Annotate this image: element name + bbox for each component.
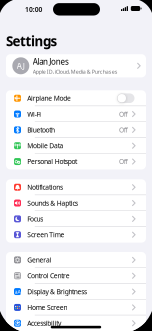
staticText: Focus xyxy=(27,214,43,223)
staticText: Apple ID, iCloud, Media & Purchases xyxy=(33,68,118,75)
button[interactable]: Home Screen xyxy=(6,299,146,315)
staticText: Alan Jones xyxy=(33,56,69,67)
button[interactable]: Notifications xyxy=(6,179,146,195)
staticText: 10:00 xyxy=(25,5,43,14)
staticText: Wi-Fi xyxy=(27,110,41,118)
staticText: Accessibility xyxy=(27,319,61,328)
button[interactable]: Control Centre xyxy=(6,268,146,284)
staticText: Personal Hotspot xyxy=(27,157,77,166)
staticText: Control Centre xyxy=(27,271,70,280)
staticText: Screen Time xyxy=(27,230,64,239)
button[interactable]: Airplane Mode xyxy=(117,93,134,103)
button[interactable]: Mobile Data xyxy=(6,138,146,154)
staticText: Sounds & Haptics xyxy=(27,199,78,207)
staticText: aA xyxy=(14,288,20,295)
button[interactable]: Wi-Fi xyxy=(6,106,146,122)
staticText: AJ xyxy=(17,60,25,71)
button[interactable]: aA xyxy=(6,284,146,299)
staticText: Bluetooth xyxy=(27,125,55,134)
button[interactable]: Accessibility xyxy=(6,315,146,331)
staticText: Notifications xyxy=(27,183,63,192)
button[interactable]: AJ xyxy=(6,54,146,77)
staticText: Airplane Mode xyxy=(27,94,71,103)
button[interactable]: Screen Time xyxy=(6,227,146,243)
staticText: Home Screen xyxy=(27,303,67,312)
button[interactable]: Bluetooth xyxy=(6,122,146,138)
button[interactable]: Focus xyxy=(6,211,146,227)
staticText: Off xyxy=(119,110,128,118)
button[interactable]: Sounds & Haptics xyxy=(6,195,146,211)
staticText: Settings xyxy=(6,32,57,50)
staticText: General xyxy=(27,255,52,264)
staticText: Display & Brightness xyxy=(27,287,87,296)
staticText: Off xyxy=(119,157,128,166)
staticText: Mobile Data xyxy=(27,141,63,150)
staticText: Off xyxy=(119,125,128,134)
button[interactable]: Personal Hotspot xyxy=(6,154,146,169)
button[interactable]: General xyxy=(6,252,146,268)
